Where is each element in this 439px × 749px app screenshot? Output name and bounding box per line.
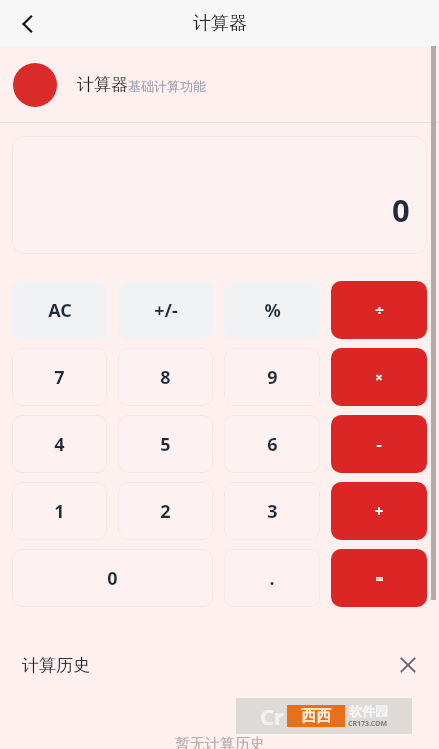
staticText: 计算器 <box>77 74 128 95</box>
staticText: + <box>374 500 384 522</box>
button[interactable]: +/- <box>118 281 213 339</box>
staticText: × <box>375 368 383 386</box>
button[interactable]: 8 <box>118 348 213 406</box>
button[interactable]: 2 <box>118 482 213 540</box>
button[interactable]: AC <box>12 281 107 339</box>
button[interactable]: 1 <box>12 482 107 540</box>
button[interactable]: 6 <box>224 415 320 473</box>
staticText: 9 <box>267 365 278 390</box>
staticText: Cr <box>260 701 284 731</box>
staticText: 1 <box>54 499 65 524</box>
staticText: 8 <box>160 365 171 390</box>
button[interactable]: × <box>331 348 427 406</box>
staticText: CR173.COM <box>348 719 388 729</box>
staticText: 暂无计算历史 <box>175 735 265 749</box>
staticText: 基础计算功能 <box>128 78 206 94</box>
staticText: 软件园 <box>349 703 388 719</box>
staticText: 7 <box>54 365 65 390</box>
staticText: +/- <box>154 298 178 323</box>
staticText: 计算历史 <box>22 655 90 676</box>
staticText: = <box>375 569 384 588</box>
button[interactable]: + <box>331 482 427 540</box>
button[interactable]: 5 <box>118 415 213 473</box>
button[interactable]: 4 <box>12 415 107 473</box>
button[interactable]: Close history <box>391 648 425 682</box>
button[interactable]: . <box>224 549 320 607</box>
staticText: 5 <box>160 432 171 457</box>
button[interactable]: 计算器 <box>0 47 439 122</box>
staticText: . <box>269 566 275 591</box>
staticText: 计算器 <box>193 12 247 35</box>
staticText: 6 <box>267 432 278 457</box>
staticText: AC <box>48 298 72 323</box>
button[interactable]: 7 <box>12 348 107 406</box>
staticText: % <box>264 298 281 323</box>
button[interactable]: ÷ <box>331 281 427 339</box>
button[interactable]: % <box>224 281 320 339</box>
staticText: 西西 <box>301 707 331 726</box>
button[interactable]: = <box>331 549 427 607</box>
button[interactable]: 9 <box>224 348 320 406</box>
button[interactable]: Back <box>8 4 48 44</box>
button[interactable]: - <box>331 415 427 473</box>
staticText: - <box>376 433 382 455</box>
staticText: ÷ <box>375 300 384 320</box>
staticText: 0 <box>107 566 118 591</box>
staticText: 2 <box>160 499 171 524</box>
button[interactable]: 0 <box>12 549 213 607</box>
button[interactable]: 3 <box>224 482 320 540</box>
staticText: 3 <box>267 499 278 524</box>
staticText: 4 <box>54 432 65 457</box>
staticText: 0 <box>392 189 410 231</box>
